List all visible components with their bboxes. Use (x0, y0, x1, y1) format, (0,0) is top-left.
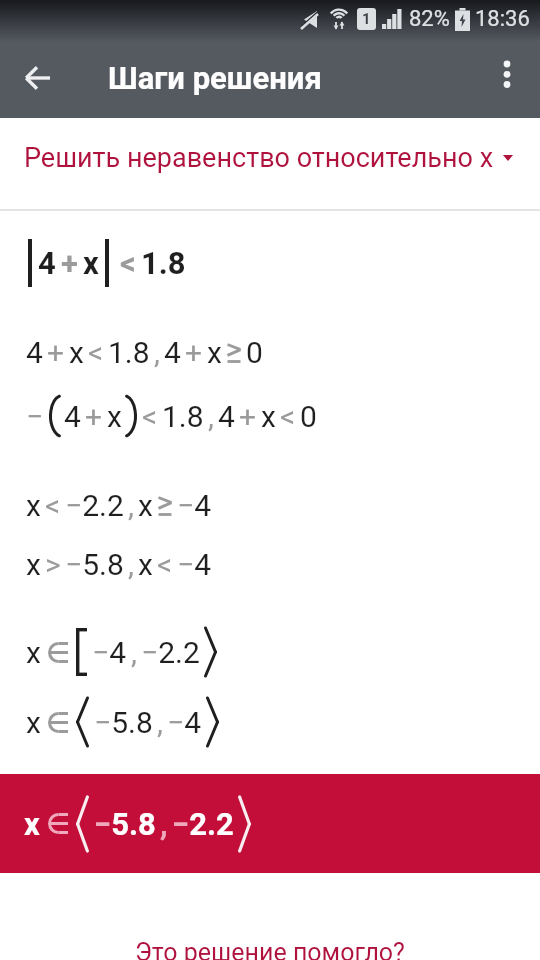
staticText: < (88, 335, 104, 370)
staticText: −5.8 (94, 806, 156, 842)
staticText: x (26, 488, 41, 523)
staticText: 0 (300, 399, 317, 434)
button[interactable] (483, 54, 531, 102)
button[interactable]: Решить неравенство относительно x (24, 130, 513, 186)
staticText: 1 (362, 10, 371, 28)
staticText: x (138, 488, 153, 523)
staticText: Решить неравенство относительно x (24, 142, 494, 174)
staticText: < (157, 547, 173, 582)
staticText: , (128, 547, 134, 582)
staticText: 4 (164, 335, 181, 370)
staticText: −4 (177, 488, 212, 523)
staticText: −2.2 (65, 488, 124, 523)
staticText: x (24, 806, 40, 842)
staticText: , (160, 806, 168, 842)
staticText: − (26, 399, 44, 434)
staticText: < (45, 488, 61, 523)
staticText: −2.2 (141, 635, 200, 670)
staticText: 1.8 (141, 245, 186, 281)
staticText: −5.8 (94, 705, 153, 740)
staticText: x (83, 245, 99, 281)
staticText: Шаги решения (108, 60, 322, 96)
staticText: x (261, 399, 276, 434)
staticText: , (131, 635, 137, 670)
staticText: + (239, 399, 257, 434)
button[interactable] (14, 54, 62, 102)
staticText: 18:36 (475, 6, 530, 32)
staticText: 1.8 (162, 399, 204, 434)
staticText: + (185, 335, 203, 370)
staticText: < (142, 399, 158, 434)
staticText: x (26, 635, 41, 670)
staticText: 0 (246, 335, 263, 370)
staticText: , (208, 399, 214, 434)
staticText: −5.8 (65, 547, 124, 582)
staticText: x (107, 399, 122, 434)
staticText: 4 (26, 335, 43, 370)
staticText: x (26, 547, 41, 582)
staticText: < (120, 245, 136, 281)
staticText: x (138, 547, 153, 582)
staticText: −4 (177, 547, 212, 582)
staticText: 4 (64, 399, 81, 434)
staticText: , (157, 705, 163, 740)
staticText: x (69, 335, 84, 370)
staticText: + (85, 399, 103, 434)
staticText: −4 (92, 635, 127, 670)
staticText: < (280, 399, 296, 434)
staticText: + (47, 335, 65, 370)
staticText: Это решение помогло? (135, 938, 405, 960)
staticText: > (45, 547, 61, 582)
button[interactable]: Это решение помогло? (0, 938, 540, 960)
staticText: −4 (167, 705, 202, 740)
staticText: −2.2 (172, 806, 234, 842)
staticText: + (61, 245, 78, 281)
staticText: x (26, 705, 41, 740)
staticText: , (128, 488, 134, 523)
staticText: x (207, 335, 222, 370)
staticText: 4 (38, 245, 56, 281)
staticText: , (154, 335, 160, 370)
staticText: 82% (409, 6, 450, 32)
staticText: 1.8 (108, 335, 150, 370)
staticText: 4 (218, 399, 235, 434)
